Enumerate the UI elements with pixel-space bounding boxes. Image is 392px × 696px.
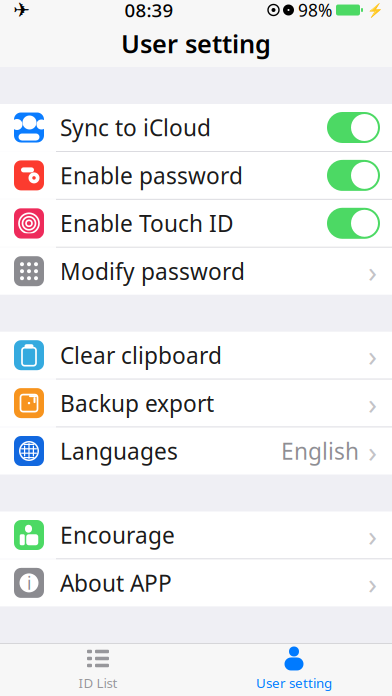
button[interactable]: Backup export <box>0 380 392 427</box>
staticText: 98% <box>298 0 332 21</box>
button[interactable]: ID List <box>0 644 196 696</box>
staticText: › <box>368 252 377 291</box>
staticText: › <box>368 563 377 602</box>
button[interactable]: Enable password <box>0 152 392 199</box>
staticText: Clear clipboard <box>60 340 222 370</box>
staticText: Enable password <box>60 160 243 190</box>
button[interactable]: i <box>0 559 392 606</box>
staticText: Modify password <box>60 256 245 286</box>
button[interactable]: Enable Touch ID <box>0 200 392 247</box>
staticText: i <box>27 571 31 594</box>
staticText: › <box>368 515 377 554</box>
staticText: Backup export <box>60 388 214 418</box>
staticText: 08:39 <box>124 0 173 22</box>
staticText: Enable Touch ID <box>60 208 234 238</box>
staticText: About APP <box>60 568 172 598</box>
staticText: › <box>368 431 377 470</box>
staticText: ID List <box>78 674 117 692</box>
button[interactable]: Modify password <box>0 248 392 295</box>
staticText: Sync to iCloud <box>60 112 211 142</box>
staticText: › <box>368 336 377 375</box>
button[interactable]: Languages <box>0 427 392 474</box>
button[interactable]: Clear clipboard <box>0 332 392 379</box>
staticText: User setting <box>121 27 271 60</box>
staticText: › <box>368 384 377 423</box>
staticText: Encourage <box>60 520 175 550</box>
staticText: English <box>281 436 359 466</box>
button[interactable]: Encourage <box>0 511 392 558</box>
staticText: ✈ <box>13 0 30 21</box>
button[interactable]: User setting <box>196 644 392 696</box>
button[interactable]: Sync to iCloud <box>0 104 392 151</box>
staticText: User setting <box>256 674 332 692</box>
staticText: ⚡ <box>367 2 384 18</box>
staticText: Languages <box>60 436 178 466</box>
